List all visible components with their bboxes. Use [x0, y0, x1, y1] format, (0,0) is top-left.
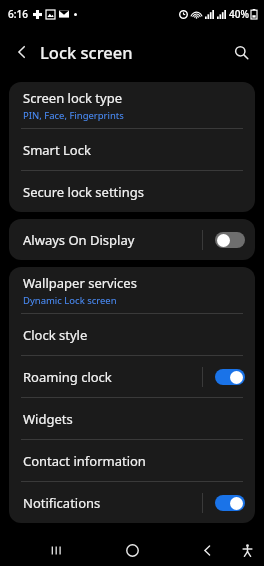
staticText: Secure lock settings — [23, 183, 144, 201]
staticText: Screen lock type — [23, 89, 122, 107]
button[interactable]: Toggle on — [215, 495, 245, 511]
button[interactable]: Toggle on — [215, 369, 245, 385]
button[interactable]: Back — [193, 536, 221, 564]
button[interactable]: Back — [6, 36, 38, 68]
button[interactable]: Toggle off — [215, 232, 245, 248]
button[interactable]: Notifications — [9, 482, 255, 523]
button[interactable]: Contact information — [9, 440, 255, 481]
staticText: Clock style — [23, 326, 88, 344]
button[interactable]: Screen lock type — [9, 82, 255, 128]
button[interactable]: Smart Lock — [9, 129, 255, 170]
button[interactable]: Home — [118, 536, 146, 564]
button[interactable]: Accessibility — [233, 536, 261, 564]
button[interactable]: Wallpaper services — [9, 267, 255, 313]
button[interactable]: Always On Display — [9, 219, 255, 260]
button[interactable]: Search — [225, 36, 257, 68]
button[interactable]: Widgets — [9, 398, 255, 439]
staticText: Smart Lock — [23, 141, 91, 159]
staticText: 6:16 — [8, 7, 28, 21]
staticText: Roaming clock — [23, 368, 112, 386]
staticText: PIN, Face, Fingerprints — [23, 109, 124, 122]
staticText: Notifications — [23, 494, 101, 512]
staticText: Contact information — [23, 452, 146, 470]
staticText: Dynamic Lock screen — [23, 294, 117, 307]
staticText: Always On Display — [23, 231, 135, 249]
staticText: Lock screen — [40, 41, 133, 63]
button[interactable]: Secure lock settings — [9, 171, 255, 212]
staticText: 40% — [229, 7, 249, 21]
staticText: Widgets — [23, 410, 73, 428]
button[interactable]: Clock style — [9, 314, 255, 355]
staticText: Wallpaper services — [23, 274, 137, 292]
button[interactable]: Recent apps — [43, 536, 71, 564]
button[interactable]: Roaming clock — [9, 356, 255, 397]
